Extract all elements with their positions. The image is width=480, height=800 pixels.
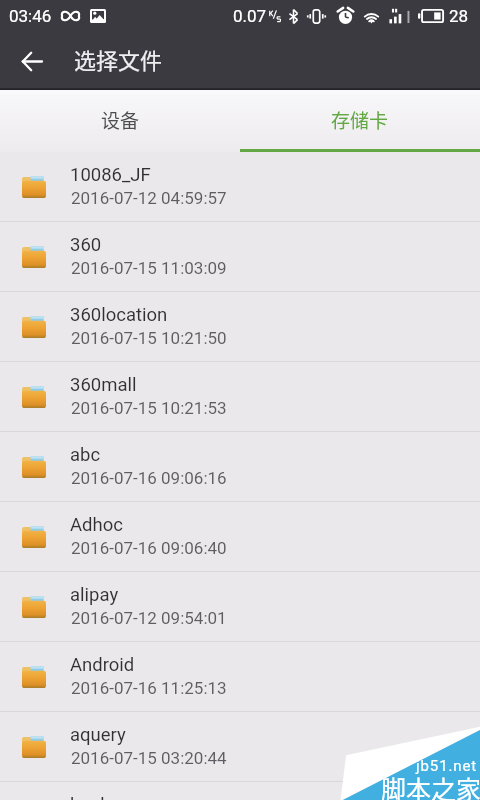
button[interactable]: Adhoc <box>0 502 480 572</box>
staticText: Android <box>70 654 135 676</box>
staticText: abc <box>70 444 101 466</box>
staticText: 设备 <box>101 106 140 134</box>
staticText: 脚本之家 <box>381 770 480 800</box>
staticText: alipay <box>70 584 119 606</box>
button[interactable]: aquery <box>0 712 480 782</box>
button[interactable]: Back <box>11 41 52 82</box>
button[interactable]: alipay <box>0 572 480 642</box>
staticText: 360 <box>70 234 102 256</box>
staticText: 03:46 <box>9 6 52 26</box>
button[interactable]: 存储卡 <box>240 90 480 152</box>
staticText: 存储卡 <box>331 106 389 134</box>
staticText: 2016-07-16 09:06:40 <box>71 538 227 558</box>
staticText: 0.07 <box>233 6 267 26</box>
button[interactable]: 360location <box>0 292 480 362</box>
staticText: 2016-07-16 11:25:13 <box>71 678 227 698</box>
staticText: 选择文件 <box>74 43 163 75</box>
staticText: Adhoc <box>70 514 123 536</box>
staticText: backup <box>70 794 131 800</box>
staticText: 2016-07-15 10:21:50 <box>71 328 227 348</box>
button[interactable]: 360mall <box>0 362 480 432</box>
button[interactable]: 10086_JF <box>0 152 480 222</box>
staticText: 2016-07-15 03:20:44 <box>71 748 227 768</box>
staticText: 2016-07-15 11:03:09 <box>71 258 227 278</box>
button[interactable]: backup <box>0 782 480 800</box>
staticText: 28 <box>449 6 469 26</box>
staticText: jb51.net <box>416 757 478 775</box>
staticText: 360mall <box>70 374 137 396</box>
staticText: 2016-07-12 04:59:57 <box>71 188 227 208</box>
staticText: 10086_JF <box>70 164 151 186</box>
staticText: 2016-07-12 09:54:01 <box>71 608 227 628</box>
button[interactable]: 设备 <box>0 90 240 152</box>
button[interactable]: Android <box>0 642 480 712</box>
staticText: 360location <box>70 304 168 326</box>
button[interactable]: 360 <box>0 222 480 292</box>
staticText: 2016-07-15 10:21:53 <box>71 398 227 418</box>
staticText: 2016-07-16 09:06:16 <box>71 468 227 488</box>
button[interactable]: abc <box>0 432 480 502</box>
staticText: aquery <box>70 724 126 746</box>
